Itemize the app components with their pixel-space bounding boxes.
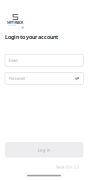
button[interactable]: Email — [5, 54, 83, 66]
button[interactable]: Log in — [5, 142, 83, 157]
staticText: Email — [8, 58, 17, 63]
staticText: Login to your account — [5, 33, 58, 41]
staticText: A V I A T I O N — [8, 24, 16, 26]
button[interactable]: Show password — [75, 77, 79, 80]
staticText: Password — [8, 76, 24, 81]
staticText: Log in — [38, 147, 51, 153]
staticText: SKYTRACK — [7, 20, 23, 25]
button[interactable]: Password — [5, 72, 83, 84]
staticText: Skytrack iOS v1.2.3 — [56, 166, 79, 169]
